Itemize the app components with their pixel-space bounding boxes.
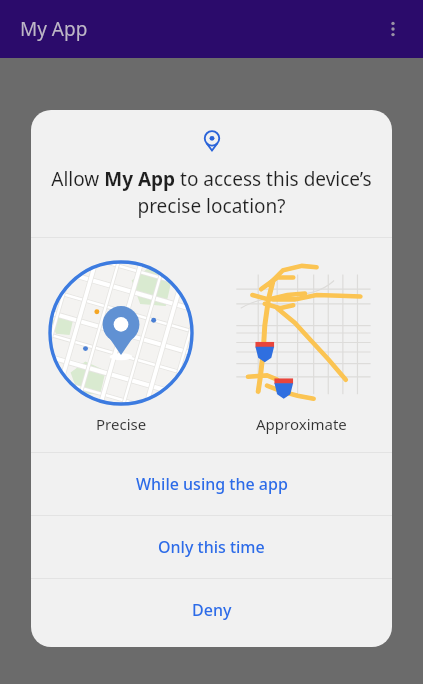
button[interactable]: Only this time: [31, 516, 392, 578]
staticText: Allow My App to access this device’s pre…: [49, 166, 374, 219]
button[interactable]: Deny: [31, 579, 392, 641]
button[interactable]: More options: [371, 7, 415, 51]
staticText: Precise: [96, 414, 147, 434]
staticText: My App: [20, 16, 88, 42]
staticText: While using the app: [136, 473, 288, 495]
staticText: Deny: [192, 599, 232, 621]
button[interactable]: Approximate: [211, 260, 392, 434]
staticText: Approximate: [256, 414, 347, 434]
button[interactable]: While using the app: [31, 453, 392, 515]
staticText: Only this time: [158, 536, 265, 558]
button[interactable]: Precise: [31, 260, 211, 434]
